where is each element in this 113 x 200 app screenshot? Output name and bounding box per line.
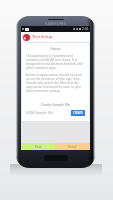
staticText: SAMSUNG	[45, 21, 67, 26]
staticText: Failed	[68, 145, 77, 149]
staticText: 2:46	[82, 27, 89, 31]
staticText: Pass	[35, 145, 42, 149]
other: App logo	[23, 34, 30, 41]
staticText: CREATE	[73, 111, 83, 115]
staticText: Test Setup	[32, 34, 53, 40]
staticText: Antivirus applications should not pick u…	[26, 73, 85, 93]
staticText: The application is harmless and contains…	[26, 54, 85, 70]
button[interactable]: CREATE	[71, 110, 85, 116]
button[interactable]: App logo	[21, 32, 90, 42]
staticText: Status	[26, 46, 85, 51]
staticText: EICAR Sample File	[26, 111, 53, 115]
staticText: Create Sample File	[26, 102, 85, 107]
button[interactable]: Pass	[21, 143, 55, 150]
button[interactable]: Failed	[55, 143, 90, 150]
